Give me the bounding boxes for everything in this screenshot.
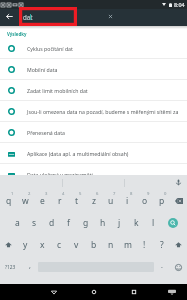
button[interactable]: b	[85, 234, 102, 256]
button[interactable]: d	[43, 212, 60, 234]
staticText: !	[143, 239, 146, 251]
staticText: Aplikace (data apl. a multimediální obsa…	[27, 150, 129, 157]
staticText: o	[142, 195, 148, 207]
button[interactable]: Cyklus počítání dat	[0, 38, 187, 58]
staticText: .	[161, 261, 163, 271]
button[interactable]: ,	[23, 256, 37, 278]
button[interactable]: Back	[2, 9, 17, 24]
button[interactable]: Recent apps	[126, 284, 142, 300]
staticText: j	[118, 217, 121, 229]
button[interactable]: f	[60, 212, 77, 234]
staticText: ,	[29, 261, 31, 271]
staticText: 1	[11, 191, 14, 197]
staticText: Zadat limit mobilních dat	[27, 87, 88, 94]
staticText: 4	[62, 191, 65, 197]
button[interactable]: Emoji	[170, 256, 187, 278]
staticText: 8:04	[174, 1, 185, 8]
button[interactable]: Clear search	[103, 9, 118, 24]
staticText: d	[49, 217, 55, 229]
staticText: a	[15, 217, 20, 229]
button[interactable]: j	[111, 212, 128, 234]
button[interactable]: Zadat limit mobilních dat	[0, 80, 187, 100]
button[interactable]: c	[51, 234, 68, 256]
staticText: v	[74, 239, 79, 251]
button[interactable]: 1	[0, 190, 17, 212]
staticText: c	[57, 239, 62, 251]
button[interactable]: Voice input	[170, 175, 187, 190]
staticText: f	[67, 217, 70, 229]
staticText: ?	[160, 239, 164, 251]
button[interactable]: Shift	[170, 234, 187, 256]
button[interactable]: .	[155, 256, 169, 278]
button[interactable]: ?	[153, 234, 170, 256]
button[interactable]: Home	[86, 284, 102, 300]
staticText: u	[108, 195, 114, 207]
staticText: t	[75, 195, 79, 207]
button[interactable]: a	[9, 212, 26, 234]
staticText: 9	[147, 191, 150, 197]
staticText: l	[152, 217, 155, 229]
staticText: ?123	[5, 264, 16, 271]
button[interactable]: Přenesená data	[0, 122, 187, 142]
staticText: h	[100, 217, 106, 229]
staticText: z	[92, 195, 96, 207]
button[interactable]: l	[145, 212, 162, 234]
button[interactable]: Backspace	[170, 190, 187, 212]
button[interactable]: Search	[163, 213, 183, 233]
staticText: 2	[28, 191, 31, 197]
staticText: g	[83, 217, 89, 229]
button[interactable]: Shift	[0, 234, 17, 256]
button[interactable]: 9	[136, 190, 153, 212]
staticText: r	[58, 195, 62, 207]
staticText: 7	[113, 191, 116, 197]
staticText: Cyklus počítání dat	[27, 45, 73, 52]
button[interactable]: x	[34, 234, 51, 256]
staticText: m	[124, 239, 132, 251]
button[interactable]: k	[128, 212, 145, 234]
button[interactable]: v	[68, 234, 85, 256]
staticText: q	[6, 195, 12, 207]
staticText: x	[40, 239, 45, 251]
button[interactable]: Hide keyboard	[164, 284, 180, 300]
button[interactable]: 3	[34, 190, 51, 212]
staticText: b	[91, 239, 97, 251]
button[interactable]: 5	[68, 190, 85, 212]
button[interactable]: !	[136, 234, 153, 256]
button[interactable]: 2	[17, 190, 34, 212]
staticText: 3	[45, 191, 48, 197]
button[interactable]: 4	[51, 190, 68, 212]
staticText: w	[22, 195, 29, 207]
staticText: p	[159, 195, 165, 207]
staticText: Přenesená data	[27, 129, 65, 136]
staticText: Výsledky	[7, 31, 27, 37]
button[interactable]: 0	[153, 190, 170, 212]
staticText: 5	[79, 191, 82, 197]
staticText: k	[134, 217, 139, 229]
staticText: n	[108, 239, 114, 251]
button[interactable]: Mobilní data	[0, 59, 187, 79]
staticText: 6	[96, 191, 99, 197]
staticText: e	[40, 195, 45, 207]
button[interactable]: s	[26, 212, 43, 234]
button[interactable]: Back	[46, 284, 62, 300]
button[interactable]: 7	[102, 190, 119, 212]
button[interactable]: ?123	[0, 256, 21, 278]
button[interactable]: Aplikace (data apl. a multimediální obsa…	[0, 143, 187, 163]
button[interactable]: g	[77, 212, 94, 234]
button[interactable]: m	[119, 234, 136, 256]
staticText: Data uložená v mezipaměti	[27, 171, 93, 178]
staticText: 0	[164, 191, 167, 197]
staticText: s	[32, 217, 37, 229]
button[interactable]: y	[17, 234, 34, 256]
button[interactable]: 8	[119, 190, 136, 212]
staticText: dat	[23, 13, 33, 21]
button[interactable]: Data uložená v mezipaměti	[0, 164, 187, 184]
button[interactable]: h	[94, 212, 111, 234]
button[interactable]: Jsou-li omezena data na pozadí, budeme s…	[0, 101, 187, 121]
staticText: i	[126, 195, 129, 207]
button[interactable]: 6	[85, 190, 102, 212]
button[interactable]: n	[102, 234, 119, 256]
